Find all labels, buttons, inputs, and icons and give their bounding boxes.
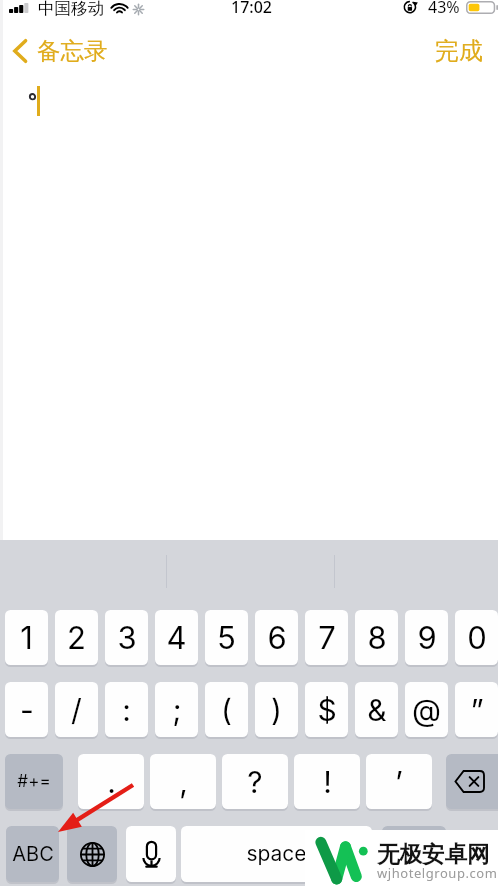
button[interactable]: : <box>105 682 148 737</box>
staticText: / <box>71 692 82 728</box>
button[interactable]: ’ <box>366 754 432 809</box>
button[interactable]: ) <box>255 682 298 737</box>
button[interactable] <box>382 826 446 882</box>
button[interactable]: 备忘录 <box>4 31 118 73</box>
button[interactable]: 9 <box>405 610 448 665</box>
staticText: ABC <box>12 842 54 866</box>
staticText: ( <box>221 692 232 728</box>
button[interactable]: & <box>355 682 398 737</box>
button[interactable]: 6 <box>255 610 298 665</box>
button[interactable]: @ <box>405 682 448 737</box>
staticText: 备忘录 <box>37 36 108 66</box>
staticText: 3 <box>117 619 137 657</box>
staticText: 2 <box>67 619 86 657</box>
staticText: @ <box>412 692 441 728</box>
button[interactable]: - <box>5 682 48 737</box>
button[interactable]: ? <box>222 754 288 809</box>
button[interactable]: 0 <box>455 610 498 665</box>
button[interactable]: 1 <box>5 610 48 665</box>
button[interactable]: 3 <box>105 610 148 665</box>
staticText: 7 <box>318 619 336 657</box>
staticText: 8 <box>367 619 387 657</box>
staticText: & <box>367 692 387 728</box>
button[interactable]: 完成 <box>422 31 497 73</box>
button[interactable]: ; <box>155 682 198 737</box>
staticText: 4 <box>166 619 187 657</box>
staticText: 完成 <box>435 36 483 66</box>
button[interactable]: . <box>78 754 144 809</box>
staticText: ; <box>172 692 182 728</box>
staticText: ! <box>323 764 332 800</box>
staticText: . <box>107 764 116 800</box>
button[interactable]: ” <box>455 682 498 737</box>
button[interactable]: ABC <box>6 826 59 882</box>
staticText: 1 <box>20 619 33 657</box>
staticText: $ <box>317 692 337 728</box>
button[interactable]: / <box>55 682 98 737</box>
button[interactable]: 8 <box>355 610 398 665</box>
button[interactable]: , <box>150 754 216 809</box>
button[interactable]: 4 <box>155 610 198 665</box>
button[interactable]: #+= <box>5 754 63 809</box>
staticText: : <box>122 692 131 728</box>
button[interactable]: 2 <box>55 610 98 665</box>
staticText: 17:02 <box>231 0 272 18</box>
button[interactable]: Switch keyboard language <box>67 826 117 882</box>
button[interactable]: 5 <box>205 610 248 665</box>
staticText: 无极安卓网 <box>377 840 490 868</box>
button[interactable]: ! <box>294 754 360 809</box>
staticText: 6 <box>267 619 287 657</box>
button[interactable]: Backspace <box>446 754 498 809</box>
staticText: ? <box>247 764 263 800</box>
staticText: ’ <box>395 764 403 800</box>
staticText: wjhotelgroup.com <box>377 864 498 882</box>
staticText: #+= <box>17 771 51 792</box>
staticText: 43% <box>428 0 460 18</box>
button[interactable]: Dictate <box>126 826 176 882</box>
staticText: 0 <box>467 619 487 657</box>
staticText: 5 <box>217 619 236 657</box>
staticText: ” <box>470 692 484 728</box>
button[interactable]: 7 <box>305 610 348 665</box>
button[interactable]: $ <box>305 682 348 737</box>
staticText: space <box>246 841 307 866</box>
staticText: - <box>20 692 34 728</box>
staticText: ) <box>271 692 282 728</box>
staticText: 9 <box>417 619 437 657</box>
button[interactable]: space <box>181 826 372 882</box>
staticText: 中国移动 <box>38 0 104 19</box>
staticText: , <box>179 764 188 800</box>
button[interactable]: ( <box>205 682 248 737</box>
